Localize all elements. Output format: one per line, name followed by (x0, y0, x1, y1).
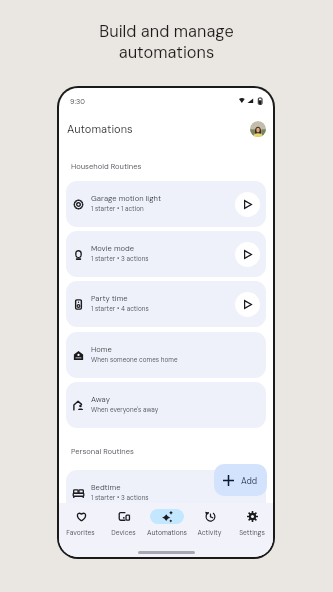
staticText: Automations (67, 122, 133, 136)
staticText: Devices (111, 528, 136, 537)
staticText: Household Routines (71, 161, 142, 171)
button[interactable]: Away (66, 382, 266, 428)
staticText: Settings (239, 528, 265, 537)
staticText: Home (91, 344, 112, 354)
staticText: 1 starter • 3 actions (91, 494, 149, 502)
button[interactable]: Automations (145, 509, 188, 537)
staticText: 1 starter • 1 action (91, 205, 144, 213)
staticText: When everyone's away (91, 406, 159, 414)
button[interactable]: Activity (188, 509, 231, 537)
staticText: Bedtime (91, 482, 121, 492)
button[interactable]: Play (235, 192, 260, 217)
staticText: Add (241, 475, 258, 486)
button[interactable]: Settings (231, 509, 273, 537)
staticText: Party time (91, 293, 128, 303)
staticText: When someone comes home (91, 356, 178, 364)
button[interactable]: Favorites (59, 509, 102, 537)
staticText: Favorites (66, 528, 95, 537)
button[interactable]: Play (235, 242, 260, 267)
staticText: 1 starter • 4 actions (91, 305, 149, 313)
staticText: Activity (197, 528, 222, 537)
button[interactable]: Home (66, 332, 266, 378)
staticText: Personal Routines (71, 446, 134, 456)
button[interactable]: Garage motion light (66, 181, 266, 227)
staticText: Build and manage automations (99, 21, 234, 63)
button[interactable]: Add (214, 464, 267, 496)
button[interactable]: Play (235, 292, 260, 317)
staticText: 9:30 (70, 97, 85, 106)
staticText: 1 starter • 3 actions (91, 255, 149, 263)
button[interactable]: Devices (102, 509, 145, 537)
staticText: Movie mode (91, 243, 135, 253)
button[interactable]: Bedtime (66, 470, 266, 516)
staticText: Garage motion light (91, 193, 162, 203)
button[interactable]: Party time (66, 281, 266, 327)
button[interactable]: Movie mode (66, 231, 266, 277)
staticText: Automations (147, 528, 187, 537)
staticText: Away (91, 394, 110, 404)
button[interactable]: Account (250, 121, 266, 137)
